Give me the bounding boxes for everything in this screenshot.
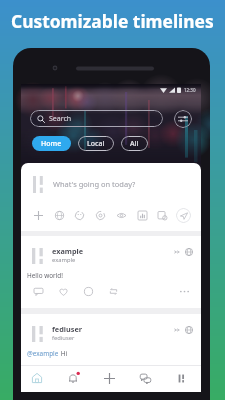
button[interactable]: Add bbox=[31, 208, 45, 222]
button[interactable]: Reply bbox=[32, 285, 44, 297]
staticText: fediuser bbox=[52, 324, 82, 334]
staticText: example bbox=[52, 246, 84, 256]
staticText: Hello world! bbox=[27, 271, 63, 280]
staticText: fediuser bbox=[52, 334, 75, 342]
staticText: What's going on today? bbox=[53, 179, 136, 189]
button[interactable]: Boost bbox=[82, 285, 94, 297]
staticText: 12:30 bbox=[184, 87, 196, 93]
button[interactable]: Send bbox=[176, 208, 191, 223]
button[interactable]: More bbox=[178, 285, 190, 297]
staticText: Local bbox=[87, 139, 105, 149]
button[interactable]: Favourite bbox=[57, 285, 69, 297]
button[interactable]: Share bbox=[107, 285, 119, 297]
staticText: All bbox=[130, 139, 139, 149]
button[interactable]: Notifications bbox=[55, 365, 91, 391]
button[interactable]: Schedule bbox=[155, 208, 169, 222]
button[interactable]: All bbox=[121, 136, 148, 151]
staticText: Hi bbox=[59, 349, 68, 358]
staticText: Customizable timelines bbox=[11, 9, 214, 33]
staticText: Home bbox=[41, 139, 62, 149]
button[interactable]: Local bbox=[78, 136, 114, 151]
button[interactable]: Globe bbox=[52, 208, 66, 222]
button[interactable]: Messages bbox=[127, 365, 163, 391]
button[interactable]: Poll bbox=[135, 208, 149, 222]
button[interactable]: What's going on today? bbox=[21, 171, 201, 197]
button[interactable]: Home bbox=[21, 365, 55, 391]
button[interactable]: Lists bbox=[163, 365, 199, 391]
staticText: @example bbox=[27, 349, 59, 358]
button[interactable]: Home bbox=[32, 136, 71, 151]
button[interactable]: Mention bbox=[93, 208, 107, 222]
button[interactable]: Filters bbox=[174, 110, 192, 128]
button[interactable]: Visibility bbox=[114, 208, 128, 222]
staticText: Search bbox=[49, 114, 72, 124]
button[interactable]: Emoji bbox=[72, 208, 86, 222]
button[interactable]: fediuser bbox=[21, 314, 201, 360]
button[interactable]: Search bbox=[30, 110, 163, 127]
staticText: example bbox=[52, 256, 76, 264]
button[interactable]: Compose bbox=[91, 365, 127, 391]
button[interactable]: example bbox=[21, 236, 201, 308]
